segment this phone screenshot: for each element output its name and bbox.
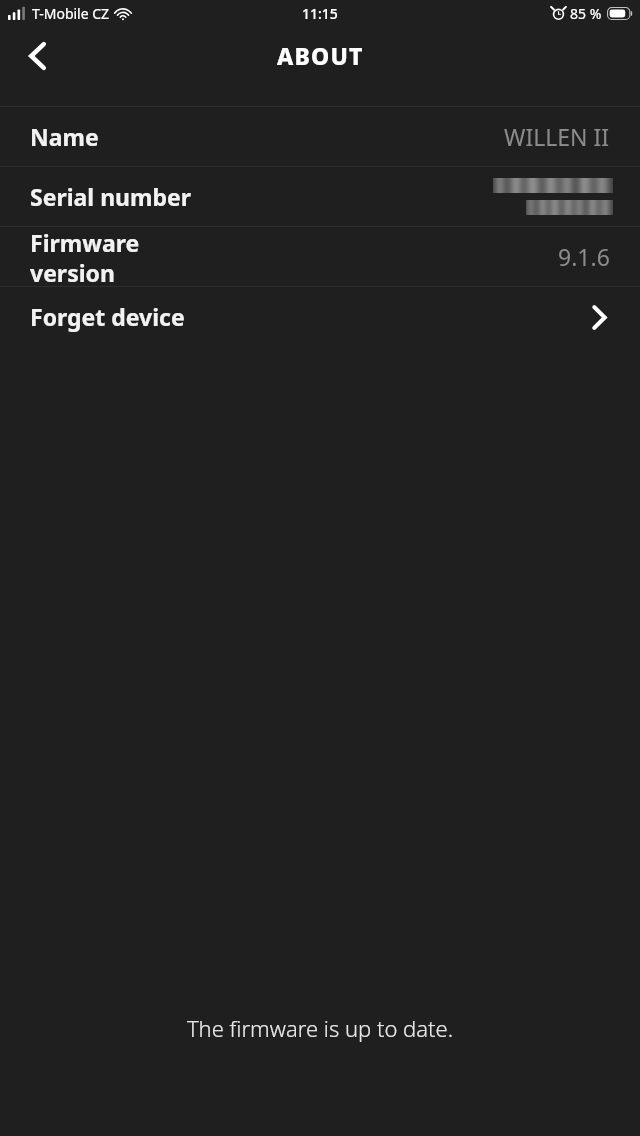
button[interactable]: Name [0,107,640,166]
staticText: The firmware is up to date. [0,1013,640,1043]
button[interactable]: Serial number [0,167,640,226]
button[interactable]: Firmware version [0,227,640,286]
staticText: 11:15 [302,4,338,23]
button[interactable]: Back [10,29,64,83]
staticText: ABOUT [277,40,364,71]
staticText: WILLEN II [504,121,610,152]
staticText: 9.1.6 [558,241,610,272]
staticText: Firmware version [30,227,140,286]
staticText: Forget device [30,301,185,332]
staticText: Name [30,121,99,152]
button[interactable]: Forget device [0,287,640,346]
staticText: 85 % [570,4,602,23]
staticText: Serial number [30,181,192,212]
staticText: T-Mobile CZ [32,4,110,23]
